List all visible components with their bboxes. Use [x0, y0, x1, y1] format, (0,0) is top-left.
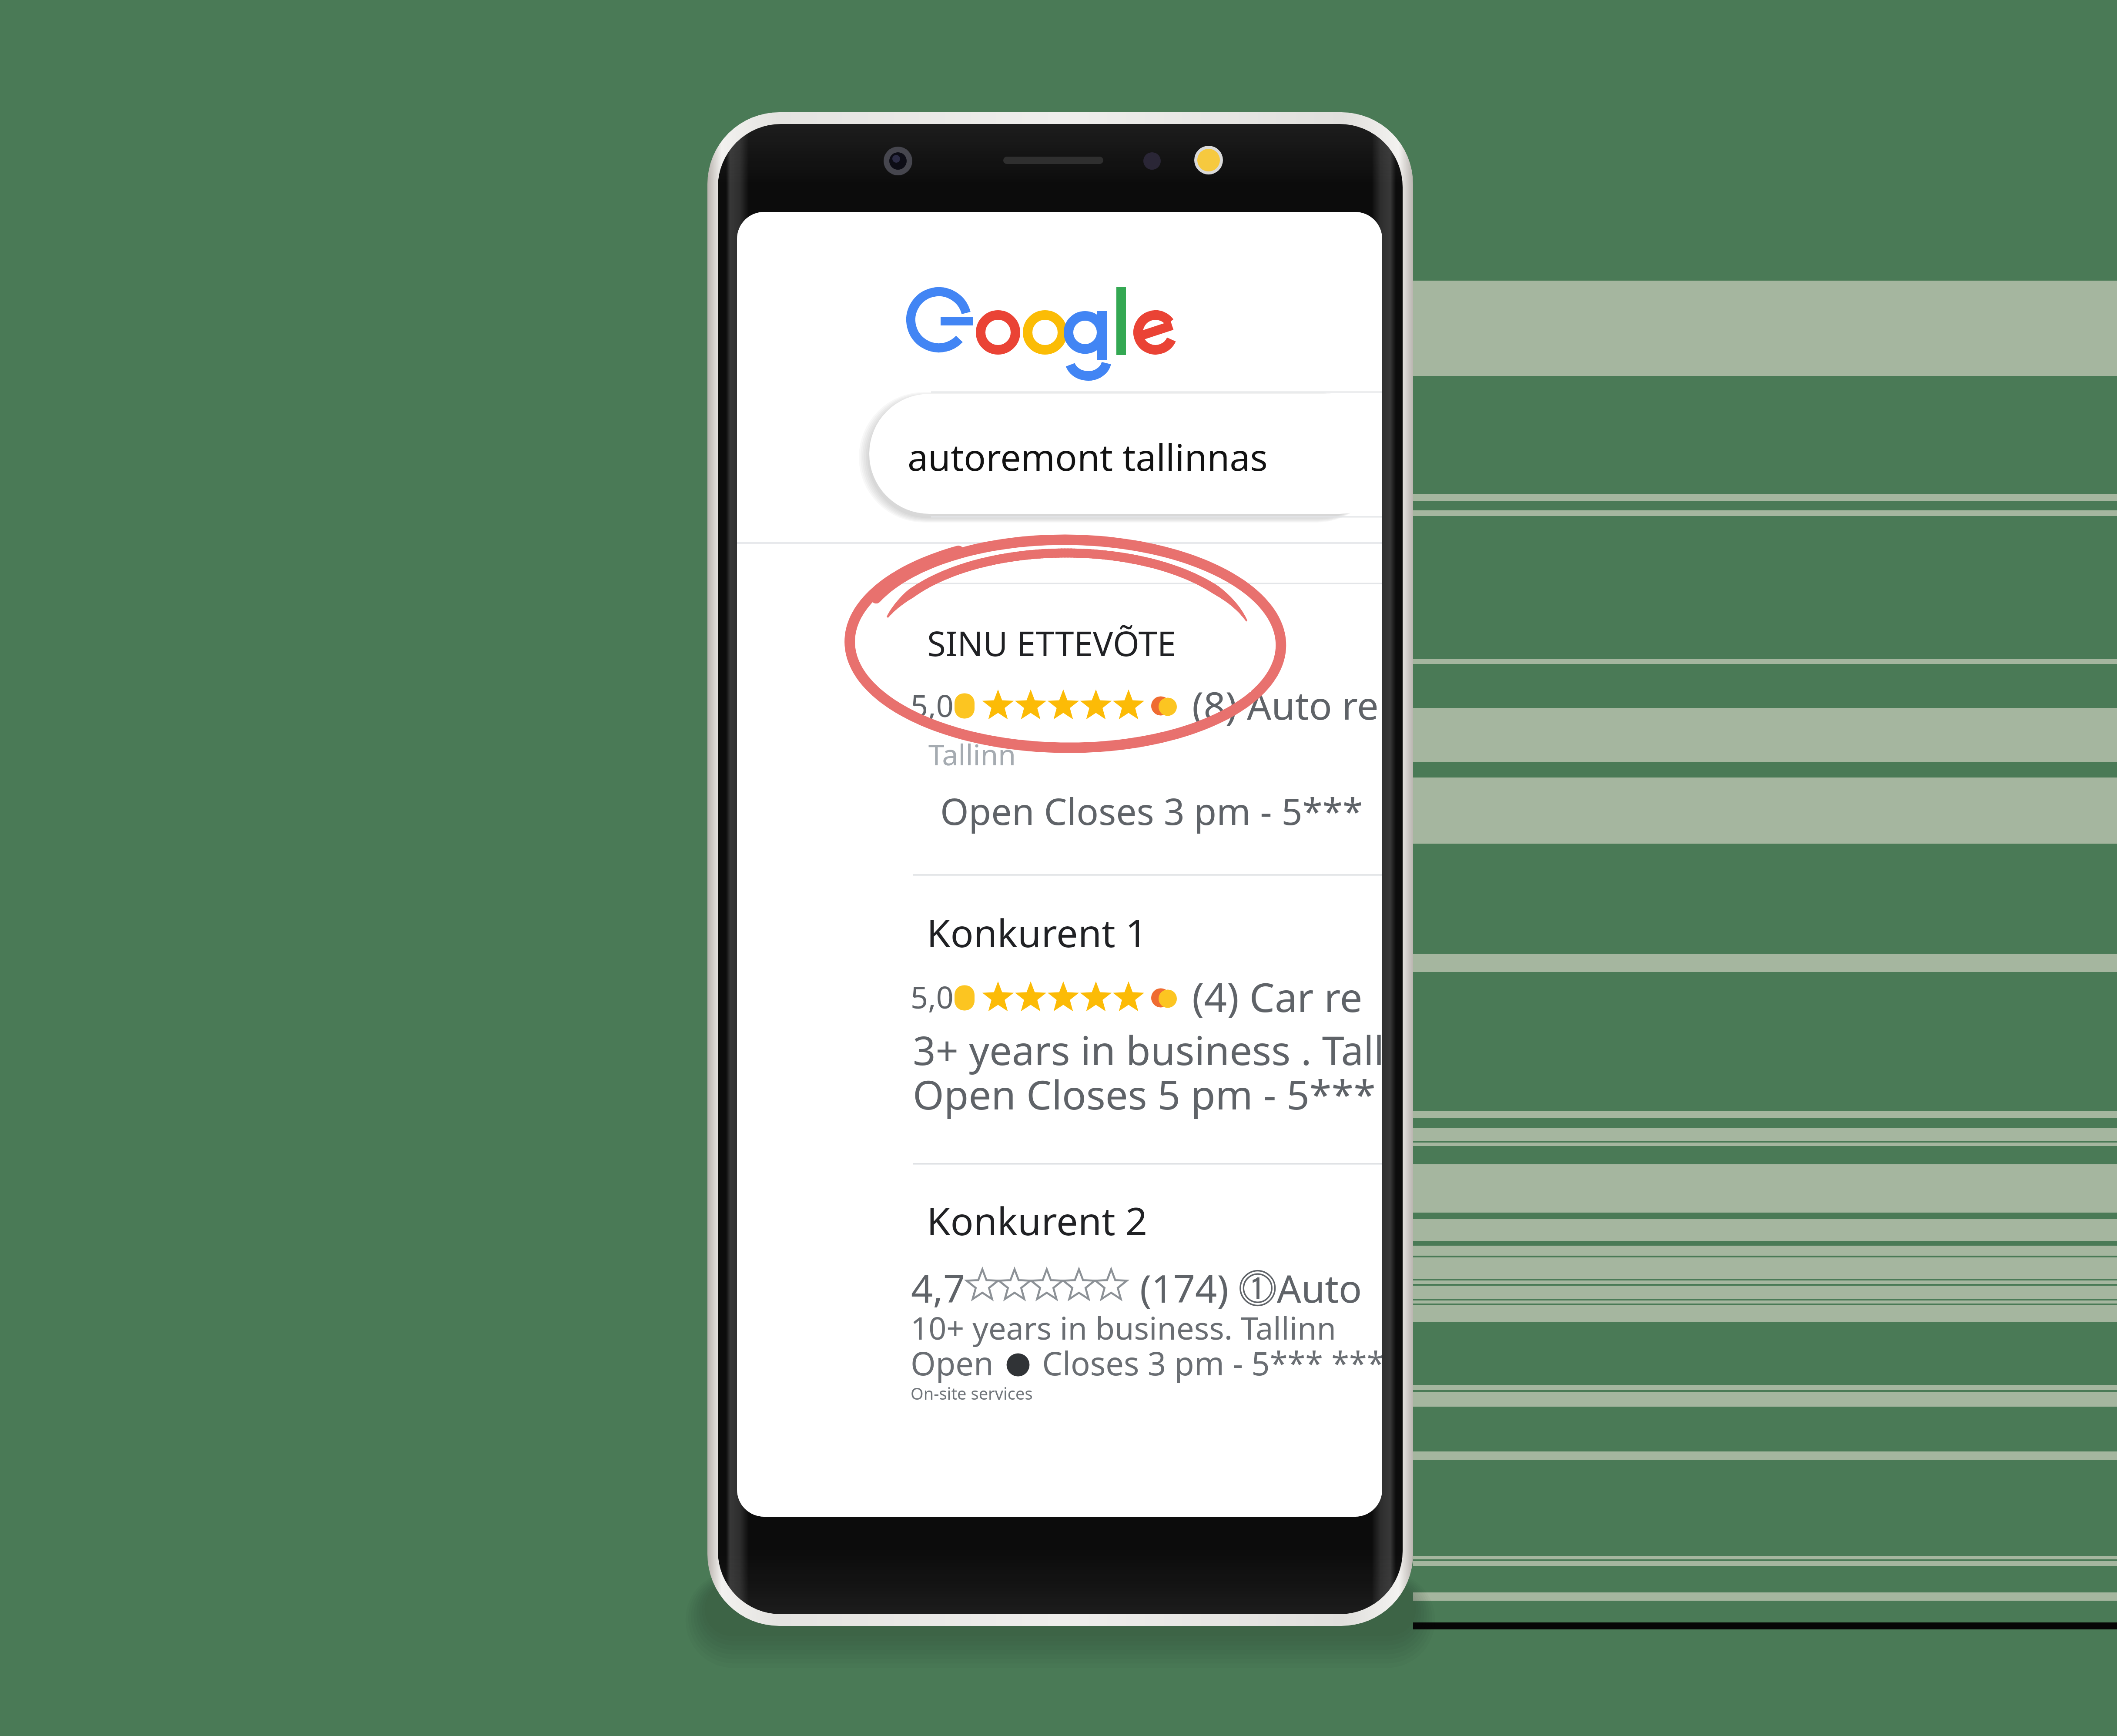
staticText: autoremont tallinnas: [908, 432, 1268, 481]
staticText: Open Closes 3 pm - 5***: [940, 786, 1363, 835]
staticText: (8) Auto re: [1192, 679, 1379, 731]
staticText: 4,7: [911, 1262, 965, 1314]
staticText: Konkurent 2: [927, 1194, 1148, 1247]
staticText: SINU ETTEVÕTE: [927, 620, 1176, 666]
staticText: Open Closes 5 pm - 5*** **: [913, 1067, 1382, 1121]
staticText: Open: [911, 1341, 1002, 1385]
staticText: (174) ⓵Auto: [1140, 1262, 1362, 1314]
staticText: On-site services: [911, 1382, 1033, 1404]
button[interactable]: [896, 592, 1382, 870]
staticText: 5,0: [911, 976, 954, 1017]
button[interactable]: autoremont tallinnas: [869, 394, 1382, 514]
staticText: Closes 3 pm - 5*** ***0: [1034, 1341, 1382, 1385]
staticText: (4) Car re: [1192, 969, 1363, 1024]
staticText: 10+ years in business. Tallinn: [911, 1306, 1337, 1349]
staticText: 3+ years in business . Tallin: [913, 1022, 1382, 1077]
button[interactable]: Google home: [901, 278, 1179, 379]
staticText: 5,0: [911, 684, 954, 726]
button[interactable]: [896, 1169, 1382, 1421]
button[interactable]: [896, 879, 1382, 1161]
staticText: Konkurent 1: [927, 906, 1148, 958]
staticText: Tallinn: [928, 734, 1016, 774]
